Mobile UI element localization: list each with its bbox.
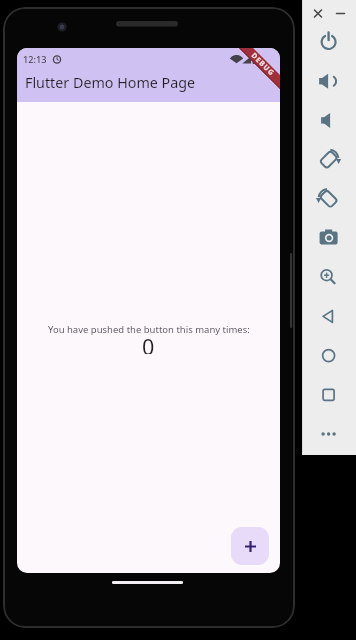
staticText: You have pushed the button this many tim… xyxy=(48,323,250,336)
staticText: 0 xyxy=(142,332,155,354)
staticText: Flutter Demo Home Page xyxy=(25,73,196,92)
staticText: DEBUG xyxy=(249,51,277,79)
button[interactable] xyxy=(231,527,269,565)
staticText: 12:13 xyxy=(23,53,47,66)
